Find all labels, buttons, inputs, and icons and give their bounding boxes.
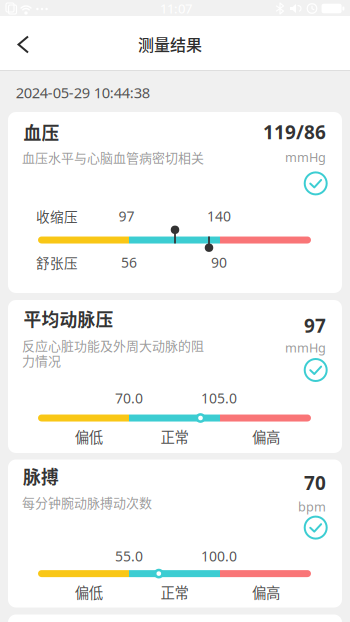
- staticText: 偏低: [75, 582, 103, 602]
- staticText: 力情况: [22, 351, 61, 369]
- staticText: 100.0: [201, 546, 237, 566]
- staticText: 每分钟腕动脉搏动次数: [22, 493, 152, 511]
- staticText: 55.0: [115, 546, 143, 566]
- staticText: 偏高: [252, 426, 280, 447]
- staticText: 105.0: [201, 388, 237, 408]
- button[interactable]: Back: [1, 22, 45, 66]
- staticText: 97: [118, 206, 134, 226]
- staticText: 97: [304, 312, 326, 338]
- staticText: 收缩压: [36, 206, 78, 226]
- staticText: 11:07: [160, 0, 192, 17]
- staticText: 140: [207, 206, 231, 226]
- staticText: 90: [211, 253, 227, 272]
- staticText: 119/86: [263, 119, 326, 145]
- staticText: 舒张压: [36, 253, 78, 272]
- staticText: 70: [304, 470, 326, 495]
- staticText: bpm: [298, 498, 326, 515]
- staticText: 脉搏: [23, 463, 59, 489]
- staticText: 测量结果: [138, 32, 202, 56]
- staticText: 56: [121, 253, 137, 272]
- staticText: 正常: [161, 582, 189, 602]
- staticText: 2024-05-29 10:44:38: [16, 82, 150, 103]
- staticText: 反应心脏功能及外周大动脉的阻: [22, 336, 204, 354]
- staticText: 平均动脉压: [23, 306, 113, 331]
- staticText: mmHg: [285, 148, 326, 166]
- staticText: 偏低: [75, 426, 103, 447]
- staticText: mmHg: [285, 339, 326, 356]
- staticText: 正常: [161, 426, 189, 447]
- staticText: 偏高: [252, 582, 280, 602]
- staticText: 血压水平与心脑血管病密切相关: [22, 148, 204, 166]
- staticText: 血压: [23, 119, 59, 145]
- staticText: 70.0: [115, 388, 143, 408]
